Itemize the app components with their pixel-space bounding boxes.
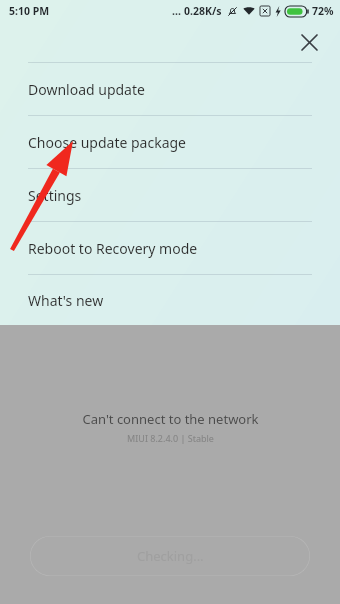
button[interactable]: Download update [0, 63, 340, 115]
staticText: Can't connect to the network [82, 410, 259, 428]
staticText: Checking... [137, 547, 204, 565]
button[interactable]: Settings [0, 169, 340, 221]
staticText: Choose update package [28, 133, 187, 152]
staticText: 72% [312, 4, 334, 18]
button[interactable]: Reboot to Recovery mode [0, 222, 340, 274]
staticText: ... [172, 4, 181, 18]
button[interactable]: Close [296, 29, 322, 55]
staticText: Reboot to Recovery mode [28, 239, 198, 258]
staticText: What's new [28, 291, 104, 310]
staticText: 5:10 PM [9, 4, 50, 18]
button[interactable]: What's new [0, 275, 340, 325]
staticText: Download update [28, 80, 145, 99]
staticText: Settings [28, 186, 82, 205]
button[interactable]: Choose update package [0, 116, 340, 168]
staticText: 0.28K/s [184, 4, 222, 18]
staticText: MIUI 8.2.4.0 | Stable [127, 432, 214, 444]
